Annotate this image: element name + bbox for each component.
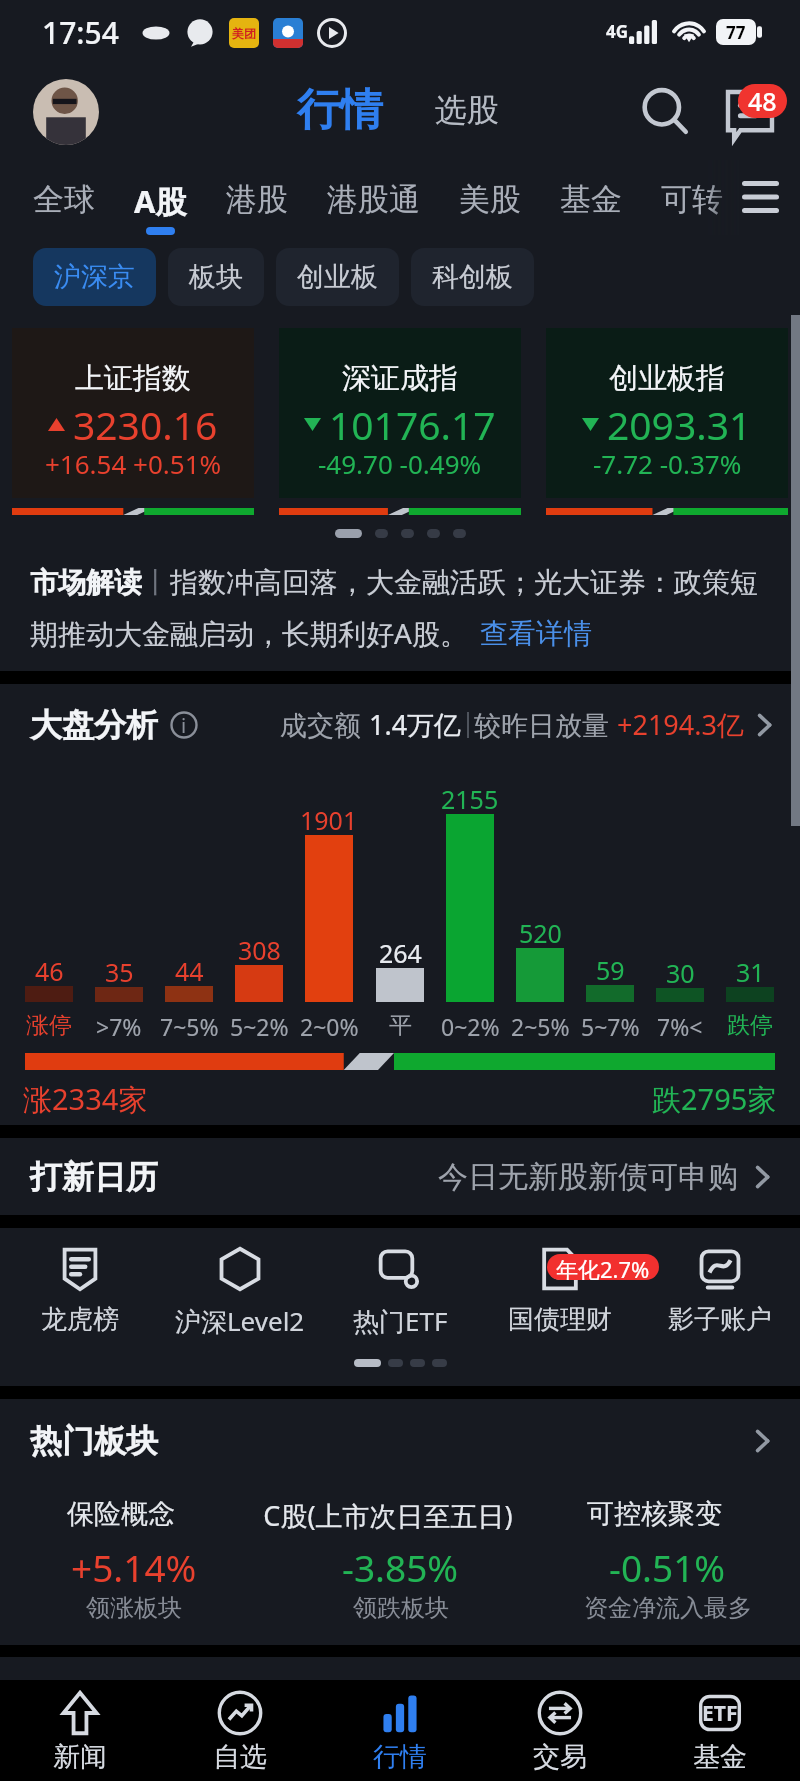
staticText: 热门板块 — [30, 1421, 158, 1461]
button[interactable]: 港股通 — [327, 160, 420, 224]
staticText: 35 — [105, 955, 134, 989]
button[interactable]: 沪深京 — [33, 248, 156, 306]
button[interactable]: 国债理财 — [480, 1246, 640, 1362]
staticText: 板块 — [189, 260, 243, 294]
staticText: 平 — [389, 1011, 412, 1040]
staticText: A股 — [134, 180, 187, 222]
staticText: 7~5% — [160, 1011, 219, 1042]
staticText: 3230.16 — [73, 398, 218, 451]
staticText: 保险概念 — [67, 1497, 175, 1531]
staticText: i — [181, 712, 187, 739]
staticText: ETF — [702, 1699, 738, 1728]
staticText: 59 — [596, 953, 625, 987]
staticText: 热门ETF — [353, 1303, 448, 1339]
staticText: 影子账户 — [668, 1303, 772, 1336]
staticText: 指数冲高回落，大金融活跃；光大证券：政策短 — [170, 565, 758, 600]
staticText: 美股 — [459, 180, 521, 219]
button[interactable]: 自选 — [160, 1680, 320, 1781]
staticText: 46 — [35, 954, 64, 988]
button[interactable]: 市场解读 — [0, 545, 800, 671]
staticText: 0~2% — [441, 1011, 500, 1042]
staticText: 1901 — [300, 803, 358, 837]
staticText: 选股 — [435, 90, 499, 130]
staticText: C股(上市次日至五日) — [263, 1497, 513, 1534]
button[interactable]: 热门ETF — [320, 1246, 480, 1362]
button[interactable]: 深证成指 — [279, 328, 521, 515]
staticText: 31 — [736, 955, 765, 989]
staticText: 跌2795家 — [652, 1079, 777, 1119]
staticText: 创业板 — [297, 260, 378, 294]
button[interactable]: A股 — [134, 160, 187, 235]
staticText: 打新日历 — [30, 1157, 158, 1197]
staticText: 涨停 — [26, 1011, 72, 1040]
staticText: 4G — [606, 20, 629, 43]
button[interactable]: 可控核聚变 — [534, 1489, 800, 1645]
staticText: 沪深京 — [54, 260, 135, 294]
staticText: -49.70 -0.49% — [318, 446, 482, 481]
button[interactable]: 全球 — [33, 160, 95, 224]
staticText: -3.85% — [342, 1542, 459, 1592]
button[interactable]: 科创板 — [411, 248, 534, 306]
button[interactable]: Profile — [33, 79, 99, 145]
staticText: -0.51% — [609, 1542, 726, 1592]
staticText: 领涨板块 — [86, 1593, 182, 1623]
button[interactable]: C股(上市次日至五日) — [267, 1489, 534, 1645]
button[interactable]: 上证指数 — [12, 328, 254, 515]
button[interactable]: 行情 — [320, 1680, 480, 1781]
button[interactable]: 行情 — [297, 83, 383, 137]
button[interactable]: 创业板 — [276, 248, 399, 306]
staticText: 港股 — [226, 180, 288, 219]
staticText: 大盘分析 — [30, 705, 158, 745]
staticText: 5~2% — [230, 1011, 289, 1042]
staticText: 自选 — [213, 1740, 267, 1774]
button[interactable]: Messages — [710, 72, 790, 152]
staticText: 1.4万亿 — [369, 706, 462, 743]
button[interactable]: 板块 — [168, 248, 264, 306]
staticText: 市场解读 — [30, 565, 142, 600]
staticText: 2093.31 — [607, 398, 752, 451]
staticText: 行情 — [297, 83, 383, 137]
staticText: 沪深Level2 — [175, 1303, 305, 1339]
button[interactable]: 沪深Level2 — [160, 1246, 320, 1362]
staticText: 涨2334家 — [23, 1079, 148, 1119]
button[interactable]: 保险概念 — [0, 1489, 267, 1645]
staticText: 基金 — [693, 1740, 747, 1774]
staticText: 期推动大金融启动，长期利好A股。 — [30, 614, 468, 652]
button[interactable]: 交易 — [480, 1680, 640, 1781]
staticText: 创业板指 — [609, 360, 725, 397]
button[interactable]: 打新日历 — [0, 1138, 800, 1215]
staticText: 行情 — [373, 1740, 427, 1774]
staticText: 2155 — [441, 782, 499, 816]
button[interactable]: 基金 — [560, 160, 622, 224]
staticText: 查看详情 — [480, 616, 592, 651]
button[interactable]: 选股 — [435, 90, 499, 130]
button[interactable]: 新闻 — [0, 1680, 160, 1781]
staticText: 龙虎榜 — [41, 1303, 119, 1336]
staticText: 可转 — [661, 180, 723, 219]
staticText: 丨 — [142, 565, 170, 600]
staticText: 今日无新股新债可申购 — [438, 1158, 738, 1196]
staticText: 10176.17 — [329, 398, 496, 451]
button[interactable]: More tabs — [708, 160, 800, 235]
staticText: 跌停 — [727, 1011, 773, 1040]
staticText: 17:54 — [42, 12, 119, 53]
staticText: 2~0% — [300, 1011, 359, 1042]
button[interactable]: 龙虎榜 — [0, 1246, 160, 1362]
staticText: 5~7% — [581, 1011, 640, 1042]
button[interactable]: 热门板块 — [0, 1399, 800, 1482]
staticText: 新闻 — [53, 1740, 107, 1774]
button[interactable]: ETF — [640, 1680, 800, 1781]
staticText: +16.54 +0.51% — [45, 446, 222, 481]
button[interactable]: 港股 — [226, 160, 288, 224]
button[interactable]: 创业板指 — [546, 328, 788, 515]
button[interactable]: 美股 — [459, 160, 521, 224]
button[interactable]: 影子账户 — [640, 1246, 800, 1362]
staticText: 较昨日放量 — [474, 706, 617, 743]
staticText: 科创板 — [432, 260, 513, 294]
button[interactable]: 大盘分析 — [0, 684, 800, 765]
staticText: 基金 — [560, 180, 622, 219]
button[interactable]: Search — [630, 76, 702, 148]
button[interactable]: 可转 — [661, 160, 723, 224]
